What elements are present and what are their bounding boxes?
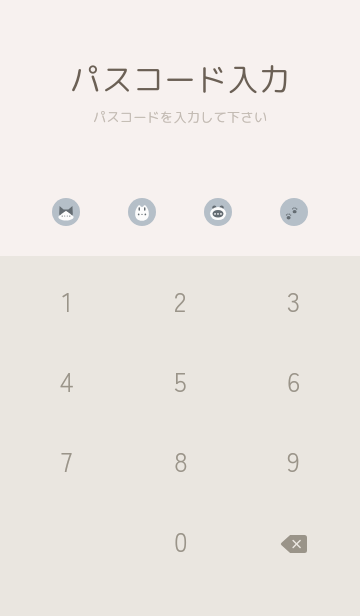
button[interactable]: 8	[124, 420, 237, 500]
button[interactable]: 1	[10, 260, 124, 340]
staticText: 2	[174, 281, 187, 320]
button[interactable]: Backspace	[237, 500, 350, 580]
staticText: 4	[60, 361, 74, 400]
button[interactable]: 6	[237, 340, 350, 420]
button[interactable]: 7	[10, 420, 124, 500]
staticText: 5	[174, 361, 187, 400]
button[interactable]: 3	[237, 260, 350, 340]
staticText: 0	[174, 521, 188, 560]
staticText: 6	[287, 361, 301, 400]
button[interactable]: Passcode digit	[280, 198, 308, 226]
button[interactable]: Passcode digit	[204, 198, 232, 226]
staticText: 1	[62, 281, 73, 320]
staticText: パスコード入力	[0, 57, 360, 101]
staticText: 8	[174, 441, 188, 480]
staticText: 7	[61, 441, 73, 480]
button[interactable]: 0	[124, 500, 237, 580]
staticText: 9	[287, 441, 300, 480]
button[interactable]: Passcode digit	[128, 198, 156, 226]
button[interactable]: 5	[124, 340, 237, 420]
button[interactable]: Passcode digit	[52, 198, 80, 226]
button[interactable]: 2	[124, 260, 237, 340]
other: Backspace	[280, 535, 307, 553]
staticText: パスコードを入力して下さい	[0, 108, 360, 127]
button[interactable]: 4	[10, 340, 124, 420]
button[interactable]: 9	[237, 420, 350, 500]
staticText: 3	[287, 281, 301, 320]
